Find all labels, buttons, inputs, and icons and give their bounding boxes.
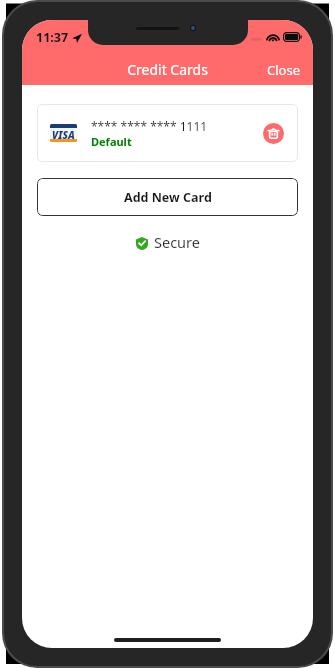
staticText: VISA [52,128,75,139]
staticText: Add New Card [124,189,212,206]
button[interactable]: VISA [37,104,298,162]
staticText: Secure [154,232,200,252]
staticText: 11:37 [36,29,69,46]
button[interactable]: Delete card [263,123,284,144]
staticText: Close [267,61,300,78]
staticText: **** **** **** 1111 [91,118,208,134]
staticText: Default [91,134,132,149]
button[interactable]: Add New Card [37,178,298,216]
button[interactable]: Close [259,58,313,81]
staticText: Credit Cards [127,60,208,79]
